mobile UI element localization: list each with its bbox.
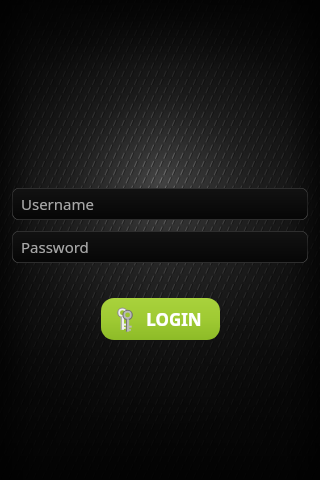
button[interactable]: Password xyxy=(12,231,308,263)
button[interactable]: LOGIN xyxy=(101,298,220,340)
staticText: LOGIN xyxy=(146,308,202,331)
staticText: Username xyxy=(21,194,94,214)
staticText: Password xyxy=(21,237,89,257)
button[interactable]: Username xyxy=(12,188,308,220)
